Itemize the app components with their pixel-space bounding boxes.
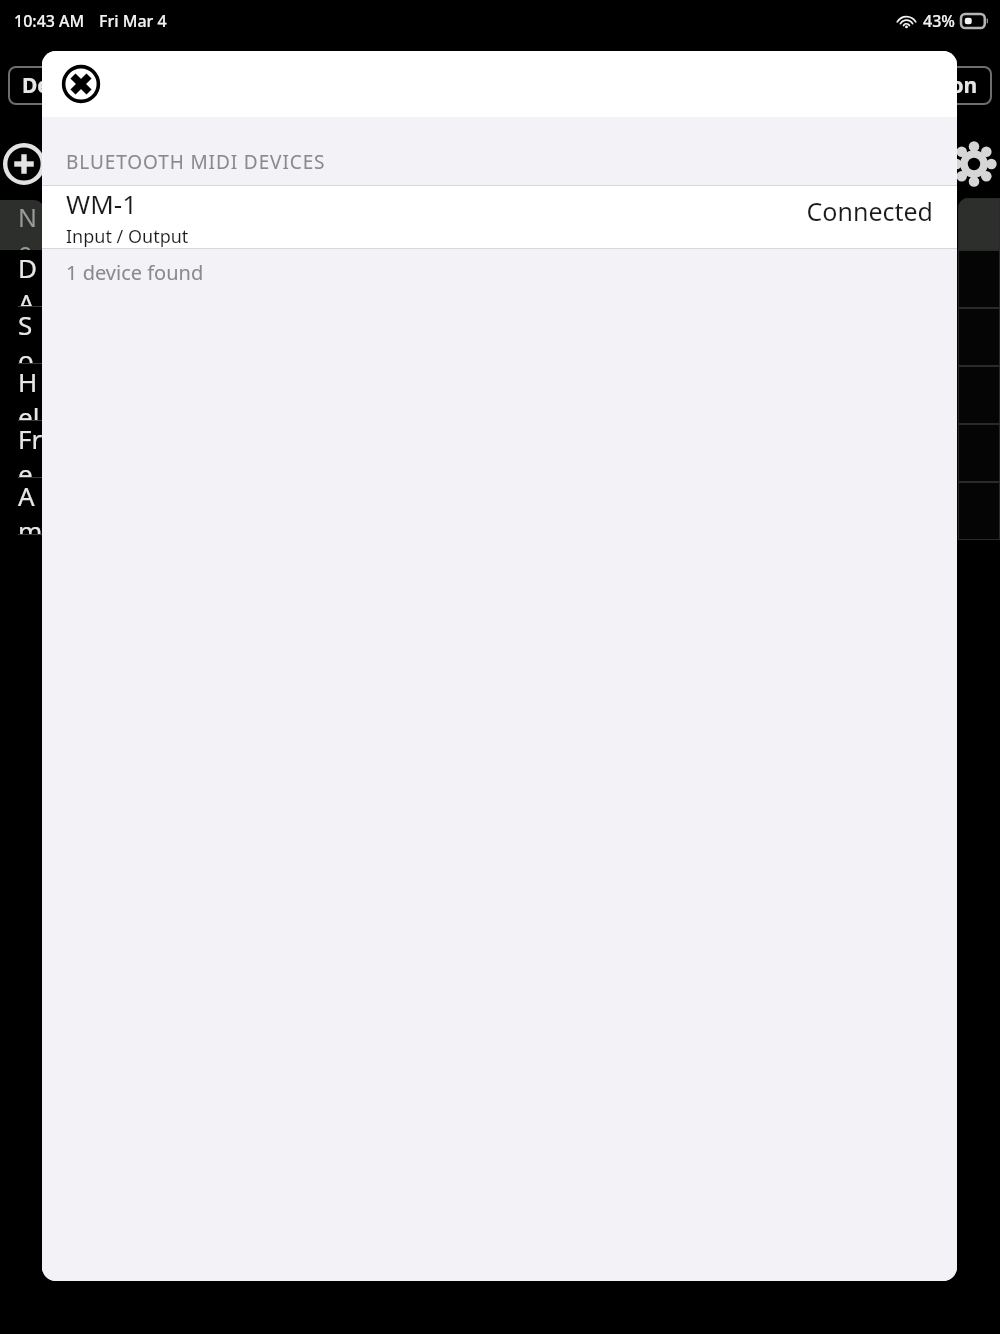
staticText: Fri Mar 4 [99, 10, 167, 32]
staticText: Session [899, 71, 978, 100]
button[interactable]: Device [8, 66, 128, 105]
staticText: 10:43 AM [14, 10, 85, 32]
button[interactable]: Settings [950, 140, 998, 188]
staticText: 43% [923, 10, 955, 32]
staticText: DAW [18, 250, 44, 307]
button[interactable]: Amp [0, 478, 44, 535]
staticText: Connected [806, 194, 933, 228]
staticText: Amp [18, 478, 44, 535]
staticText: 1 device found [66, 259, 204, 286]
button[interactable] [958, 366, 1000, 424]
staticText: Song [18, 307, 44, 364]
button[interactable]: New [0, 200, 44, 250]
button[interactable]: WM-1 [42, 186, 957, 248]
button[interactable]: Session [872, 66, 992, 105]
staticText: Device [22, 71, 92, 100]
button[interactable] [958, 198, 1000, 250]
button[interactable]: Hello [0, 364, 44, 421]
button[interactable]: Close [58, 61, 104, 107]
button[interactable] [958, 308, 1000, 366]
button[interactable] [958, 250, 1000, 308]
button[interactable]: Free [0, 421, 44, 478]
staticText: Input / Output [66, 224, 189, 248]
button[interactable]: Add [2, 142, 46, 186]
button[interactable] [958, 482, 1000, 540]
staticText: New [18, 200, 44, 250]
staticText: BLUETOOTH MIDI DEVICES [66, 149, 326, 175]
staticText: WM-1 [66, 186, 138, 221]
button[interactable]: Song [0, 307, 44, 364]
button[interactable] [958, 424, 1000, 482]
button[interactable]: DAW [0, 250, 44, 307]
staticText: Free [18, 421, 44, 478]
staticText: Hello [18, 364, 44, 421]
